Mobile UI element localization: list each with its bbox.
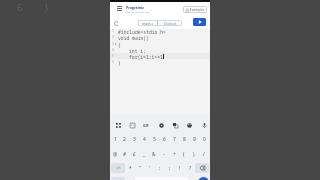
staticText: #include<stdio.h>: [118, 29, 166, 35]
button[interactable]: 7: [169, 133, 179, 145]
button[interactable]: Stickers: [127, 120, 137, 130]
button[interactable]: 6: [159, 133, 169, 145]
staticText: ": [139, 165, 141, 172]
staticText: /: [203, 151, 205, 158]
staticText: £: [133, 151, 136, 158]
button[interactable]: 1: [111, 133, 120, 145]
staticText: ;: [169, 165, 171, 172]
staticText: =\<: [116, 166, 121, 170]
button[interactable]: 4: [139, 133, 149, 145]
button[interactable]: +: [169, 148, 179, 160]
button[interactable]: ): [189, 148, 199, 160]
staticText: 5: [112, 54, 114, 58]
staticText: Learn to code for free: [125, 10, 150, 13]
staticText: 0: [203, 136, 206, 143]
button[interactable]: 2: [120, 133, 129, 145]
button[interactable]: Examples: [183, 6, 207, 13]
staticText: 1: [112, 29, 114, 33]
button[interactable]: Open navigation menu: [114, 3, 124, 13]
staticText: void main(): [118, 35, 149, 41]
button[interactable]: !: [175, 162, 185, 174]
staticText: 2: [123, 136, 126, 143]
button[interactable]: 0: [199, 133, 209, 145]
staticText: for(i=1;i<=1: [129, 54, 163, 60]
button[interactable]: Emoji: [113, 120, 123, 130]
button[interactable]: Run: [193, 18, 206, 26]
staticText: ?: [189, 165, 192, 172]
staticText: int i;: [129, 48, 146, 54]
button[interactable]: 8: [179, 133, 189, 145]
staticText: :: [159, 165, 161, 172]
button[interactable]: 5: [149, 133, 159, 145]
button[interactable]: Backspace: [195, 163, 209, 173]
staticText: 6: [163, 136, 166, 143]
button[interactable]: GIF: [141, 120, 151, 130]
staticText: 6: [112, 60, 114, 64]
staticText: @: [113, 151, 118, 158]
staticText: 6 }: [17, 1, 50, 13]
button[interactable]: main.c: [138, 20, 158, 26]
button[interactable]: Output: [158, 20, 182, 26]
staticText: 7: [173, 136, 176, 143]
button[interactable]: Settings: [156, 120, 166, 130]
staticText: GIF: [143, 123, 149, 128]
staticText: #: [123, 151, 127, 158]
button[interactable]: &: [149, 148, 159, 160]
staticText: _: [143, 151, 146, 158]
button[interactable]: Reset code: [113, 20, 120, 27]
staticText: +: [173, 151, 176, 158]
staticText: *: [129, 165, 132, 172]
staticText: 8: [183, 136, 186, 143]
button[interactable]: Enter: [198, 177, 209, 180]
button[interactable]: 9: [189, 133, 199, 145]
button[interactable]: _: [139, 148, 149, 160]
staticText: 5: [153, 136, 156, 143]
button[interactable]: /: [199, 148, 209, 160]
staticText: 4: [112, 48, 114, 52]
staticText: &: [152, 151, 156, 158]
staticText: !: [179, 165, 181, 172]
button[interactable]: @: [111, 148, 120, 160]
staticText: main.c: [142, 21, 154, 26]
button[interactable]: =\<: [111, 163, 125, 173]
staticText: -: [163, 151, 165, 158]
staticText: 3: [112, 42, 114, 46]
staticText: 3: [133, 136, 136, 143]
staticText: 1: [114, 136, 117, 143]
staticText: (: [183, 151, 185, 158]
button[interactable]: *: [125, 162, 135, 174]
staticText: 9: [193, 136, 196, 143]
staticText: ): [193, 151, 195, 158]
button[interactable]: ': [145, 162, 155, 174]
button[interactable]: :: [155, 162, 165, 174]
staticText: Examples: [190, 8, 205, 12]
staticText: Output: [164, 21, 177, 26]
button[interactable]: ?: [185, 162, 195, 174]
button[interactable]: #: [120, 148, 129, 160]
staticText: Programiz: [126, 5, 144, 10]
staticText: 2: [112, 35, 114, 39]
staticText: }: [118, 60, 121, 66]
staticText: 4: [143, 136, 146, 143]
staticText: {: [118, 42, 121, 48]
button[interactable]: -: [159, 148, 169, 160]
button[interactable]: Voice input: [199, 120, 209, 130]
button[interactable]: ": [135, 162, 145, 174]
button[interactable]: (: [179, 148, 189, 160]
staticText: ': [149, 165, 151, 172]
button[interactable]: ;: [165, 162, 175, 174]
button[interactable]: Translate: [170, 120, 180, 130]
button[interactable]: £: [129, 148, 139, 160]
button[interactable]: 3: [129, 133, 139, 145]
button[interactable]: Themes: [184, 120, 194, 130]
